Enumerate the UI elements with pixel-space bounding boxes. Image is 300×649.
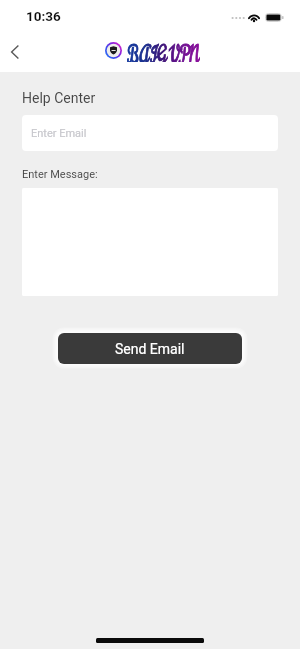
staticText: Enter Email — [31, 127, 87, 140]
staticText: 10:36 — [26, 8, 61, 24]
staticText: Enter Message: — [22, 168, 98, 181]
button[interactable]: Send Email — [58, 333, 242, 364]
staticText: Send Email — [115, 341, 185, 357]
staticText: Help Center — [22, 90, 96, 106]
button[interactable]: Enter Email — [22, 115, 278, 151]
staticText: BAIG VPN — [127, 38, 200, 62]
staticText: BAIG VPN — [127, 38, 200, 62]
button[interactable]: Back — [0, 34, 33, 70]
